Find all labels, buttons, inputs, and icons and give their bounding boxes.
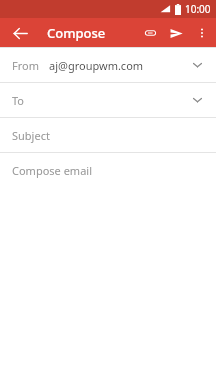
staticText: Compose email	[12, 163, 92, 178]
button[interactable]: Send	[163, 20, 189, 46]
button[interactable]: Back	[8, 21, 32, 45]
staticText: Subject	[12, 128, 50, 143]
staticText: From	[12, 58, 39, 73]
button[interactable]: Subject	[0, 118, 216, 152]
button[interactable]: Compose email	[0, 153, 216, 187]
button[interactable]: To	[0, 83, 216, 117]
staticText: aj@groupwm.com	[49, 58, 144, 73]
button[interactable]: From	[0, 48, 216, 82]
staticText: Compose	[47, 24, 106, 42]
staticText: 10:00	[185, 2, 211, 16]
staticText: To	[12, 93, 25, 108]
button[interactable]: Expand	[188, 91, 206, 109]
button[interactable]: Expand	[188, 56, 206, 74]
button[interactable]: More options	[189, 20, 215, 46]
button[interactable]: Attach file	[137, 20, 163, 46]
